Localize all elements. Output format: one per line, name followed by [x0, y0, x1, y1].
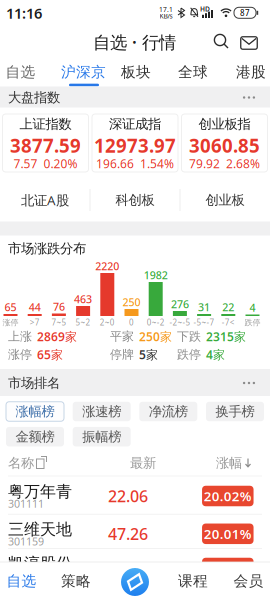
staticText: 会员: [233, 572, 263, 590]
staticText: 301111: [8, 496, 44, 511]
staticText: 17.1: [159, 5, 173, 14]
button[interactable]: 自选: [5, 62, 35, 82]
staticText: 250: [122, 295, 140, 309]
button[interactable]: 振幅榜: [73, 427, 131, 446]
staticText: 市场排名: [8, 375, 60, 391]
staticText: 2~0: [100, 317, 115, 328]
staticText: 44: [29, 300, 41, 314]
button[interactable]: 北证A股: [1, 185, 89, 215]
button[interactable]: 沪深京: [61, 62, 106, 82]
staticText: 最新: [130, 455, 156, 471]
staticText: 板块: [121, 63, 151, 81]
button[interactable]: Search: [210, 31, 234, 55]
staticText: -5~-7: [194, 317, 215, 328]
staticText: 3877.59: [10, 133, 81, 158]
staticText: 0~-2: [147, 317, 165, 328]
staticText: 7.57 0.20%: [13, 155, 77, 171]
button[interactable]: 深证成指: [91, 114, 179, 172]
button[interactable]: 三维天地: [0, 514, 270, 552]
button[interactable]: 会员: [228, 566, 268, 596]
button[interactable]: 上证指数: [1, 114, 89, 172]
staticText: 31.02: [108, 557, 148, 579]
button[interactable]: 自选: [1, 566, 41, 596]
staticText: 20.01%: [204, 525, 252, 543]
button[interactable]: 金额榜: [6, 427, 64, 446]
staticText: 科创板: [115, 192, 154, 208]
staticText: 65家: [37, 346, 63, 362]
staticText: 自选: [6, 572, 36, 590]
staticText: 22.06: [108, 485, 148, 507]
staticText: 4: [249, 300, 255, 315]
staticText: 港股: [236, 63, 266, 81]
staticText: 平家: [110, 329, 134, 344]
staticText: 粤万年青: [8, 482, 72, 501]
button[interactable]: 凯淳股份: [0, 548, 270, 586]
button[interactable]: 涨速榜: [73, 402, 131, 421]
staticText: 金额榜: [15, 428, 54, 445]
staticText: 涨速榜: [82, 403, 121, 420]
staticText: KB/s: [159, 12, 172, 20]
staticText: 76: [53, 299, 65, 314]
button[interactable]: 创业板指: [180, 114, 268, 172]
button[interactable]: 课程: [173, 566, 213, 596]
button[interactable]: 切换显示: [33, 452, 50, 472]
staticText: 301159: [8, 534, 44, 548]
staticText: 47.26: [108, 523, 148, 544]
staticText: 策略: [61, 572, 91, 590]
staticText: 跌停: [177, 347, 201, 362]
staticText: 涨幅榜: [15, 403, 54, 420]
button[interactable]: 换手榜: [206, 402, 264, 421]
button[interactable]: 科创板: [91, 185, 179, 215]
staticText: 北证A股: [21, 191, 69, 209]
staticText: 涨幅: [216, 455, 242, 471]
staticText: 0: [129, 317, 134, 328]
staticText: 名称: [8, 455, 34, 471]
staticText: -7<: [222, 317, 235, 328]
button[interactable]: More: [236, 89, 262, 105]
button[interactable]: 港股: [236, 62, 266, 82]
button[interactable]: 创业板: [181, 185, 269, 215]
staticText: 净流榜: [149, 403, 188, 420]
staticText: 市场涨跌分布: [8, 240, 86, 257]
button[interactable]: Messages: [237, 31, 261, 55]
button[interactable]: 涨幅: [212, 454, 256, 472]
button[interactable]: 板块: [121, 62, 151, 82]
staticText: 创业板: [205, 192, 244, 208]
staticText: 12973.97: [94, 133, 176, 158]
button[interactable]: 指南针: [120, 567, 150, 597]
staticText: 7~5: [51, 317, 66, 328]
staticText: 涨停: [2, 318, 18, 327]
button[interactable]: 净流榜: [139, 402, 197, 421]
staticText: 上证指数: [19, 116, 71, 132]
staticText: 课程: [178, 572, 208, 590]
staticText: 20.00%: [204, 559, 252, 577]
staticText: 停牌: [110, 347, 134, 362]
button[interactable]: 粤万年青: [0, 476, 270, 514]
button[interactable]: 策略: [56, 566, 96, 596]
staticText: 全球: [178, 63, 208, 81]
staticText: 上涨: [8, 329, 32, 344]
staticText: -2~-5: [169, 317, 190, 328]
staticText: 2220: [95, 259, 119, 273]
staticText: 深证成指: [109, 116, 161, 132]
staticText: 5~2: [76, 317, 91, 328]
button[interactable]: 自选 · 行情: [89, 31, 179, 53]
staticText: >7: [30, 317, 40, 328]
staticText: 涨停: [8, 347, 32, 362]
staticText: 463: [74, 292, 92, 306]
staticText: 5家: [139, 346, 158, 362]
staticText: 31: [198, 300, 210, 314]
button[interactable]: 涨幅榜: [6, 402, 64, 421]
staticText: 三维天地: [8, 520, 72, 539]
staticText: 250家: [139, 328, 172, 344]
button[interactable]: 全球: [178, 62, 208, 82]
staticText: 创业板指: [198, 116, 250, 132]
staticText: 301001: [8, 568, 44, 583]
button[interactable]: More: [236, 375, 262, 391]
staticText: 自选 · 行情: [93, 30, 176, 53]
staticText: 大盘指数: [8, 89, 60, 106]
staticText: 22: [222, 300, 234, 314]
staticText: 276: [171, 297, 189, 311]
staticText: 4家: [206, 346, 225, 362]
staticText: 振幅榜: [82, 428, 121, 445]
